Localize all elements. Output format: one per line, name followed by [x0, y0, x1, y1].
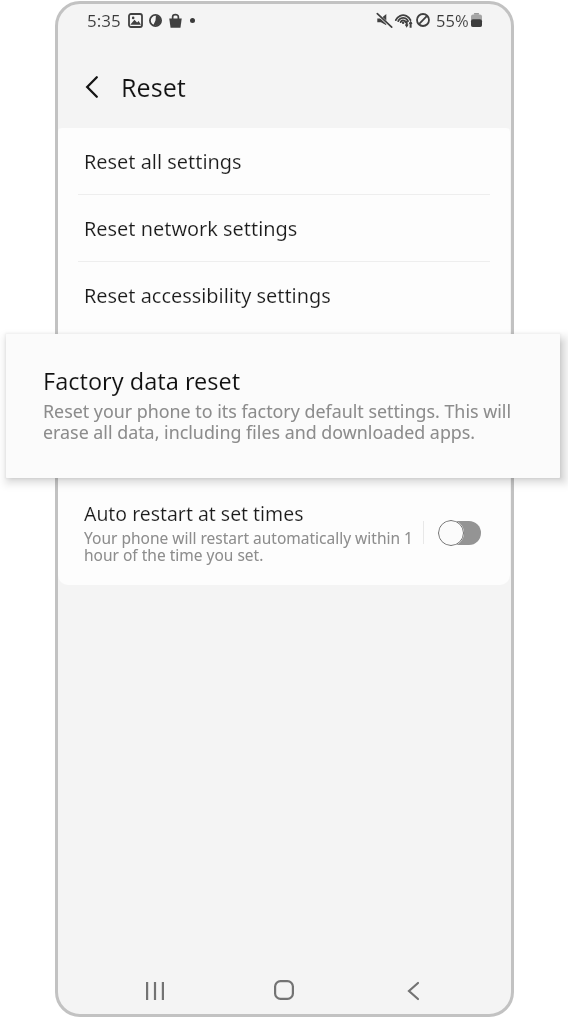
button[interactable]: Reset network settings [58, 195, 510, 261]
button[interactable]: Reset accessibility settings [58, 262, 510, 328]
staticText: Factory data reset [43, 365, 241, 397]
button[interactable]: Navigate up [70, 65, 114, 109]
button[interactable]: Back [389, 967, 437, 1015]
button[interactable]: Auto restart at set times [58, 482, 510, 584]
staticText: Reset your phone to its factory default … [84, 384, 484, 450]
button[interactable]: Factory data reset [58, 329, 510, 481]
button[interactable]: Recent apps [131, 967, 179, 1015]
staticText: Reset all settings [84, 148, 242, 175]
button[interactable]: Home [260, 966, 308, 1014]
staticText: 5:35 [87, 9, 121, 32]
staticText: Auto restart at set times [84, 500, 304, 526]
staticText: Your phone will restart automatically wi… [84, 527, 424, 566]
staticText: 55% [436, 9, 469, 31]
button[interactable]: Auto restart at set times toggle [431, 508, 489, 558]
staticText: Reset your phone to its factory default … [43, 399, 523, 445]
staticText: Factory data reset [84, 351, 252, 378]
button[interactable]: Factory data reset [6, 334, 560, 478]
button[interactable]: Reset all settings [58, 128, 510, 194]
staticText: Reset network settings [84, 215, 298, 242]
staticText: Reset accessibility settings [84, 282, 331, 309]
staticText: Reset [121, 70, 186, 104]
